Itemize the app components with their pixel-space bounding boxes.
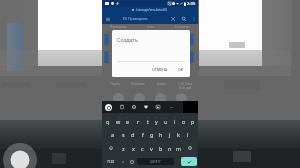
button[interactable]: Settings bbox=[130, 103, 137, 111]
staticText: 4 bbox=[138, 115, 140, 118]
staticText: o bbox=[182, 118, 186, 125]
staticText: z bbox=[122, 145, 125, 152]
staticText: k bbox=[177, 131, 180, 138]
button[interactable]: 5 bbox=[143, 113, 152, 127]
staticText: Scripts bbox=[157, 82, 166, 86]
staticText: i bbox=[174, 118, 176, 125]
staticText: f bbox=[142, 131, 144, 138]
staticText: t bbox=[147, 118, 149, 125]
staticText: j bbox=[169, 131, 171, 138]
staticText: c bbox=[141, 145, 144, 152]
staticText: 3 bbox=[127, 115, 129, 118]
button[interactable]: Enter bbox=[181, 157, 197, 166]
button[interactable]: x bbox=[128, 141, 138, 155]
staticText: Сеть bbox=[147, 25, 154, 29]
button[interactable]: j bbox=[165, 127, 174, 141]
staticText: Средства bbox=[175, 25, 190, 29]
button[interactable]: 0 bbox=[188, 113, 197, 127]
button[interactable]: 7 bbox=[161, 113, 170, 127]
staticText: 5 bbox=[147, 115, 149, 118]
button[interactable]: Close bbox=[169, 15, 176, 22]
button[interactable]: Menu bbox=[104, 15, 112, 23]
button[interactable]: Shift bbox=[103, 141, 118, 155]
staticText: p bbox=[191, 118, 195, 125]
staticText: ?123 bbox=[107, 159, 115, 164]
staticText: h bbox=[159, 131, 163, 138]
staticText: n bbox=[168, 145, 172, 152]
button[interactable]: ОТМЕНА bbox=[149, 65, 171, 74]
button[interactable]: n bbox=[165, 141, 174, 155]
staticText: 8 bbox=[174, 115, 176, 118]
staticText: ES Проводник bbox=[123, 16, 148, 21]
button[interactable]: h bbox=[156, 127, 165, 141]
button[interactable]: Search bbox=[180, 15, 187, 22]
staticText: b bbox=[159, 145, 163, 152]
staticText: d bbox=[131, 131, 135, 138]
button[interactable]: Сеть bbox=[134, 24, 166, 30]
staticText: /storage/emulated/0 bbox=[136, 8, 168, 12]
button[interactable]: Средства bbox=[166, 24, 198, 30]
button[interactable]: Google bbox=[105, 104, 112, 111]
button[interactable]: 4 bbox=[133, 113, 143, 127]
button[interactable]: 3 bbox=[123, 113, 133, 127]
button[interactable]: Backspace bbox=[183, 141, 197, 155]
button[interactable]: QWERTY bbox=[137, 158, 174, 165]
staticText: y bbox=[155, 118, 158, 125]
staticText: QWERTY bbox=[150, 160, 161, 164]
button[interactable]: 6 bbox=[152, 113, 161, 127]
staticText: Создать bbox=[117, 36, 138, 43]
staticText: a bbox=[111, 131, 115, 138]
button[interactable]: c bbox=[138, 141, 147, 155]
button[interactable]: l bbox=[183, 127, 192, 141]
staticText: 1_00_Extra Tools.apk bbox=[178, 82, 192, 89]
staticText: e bbox=[126, 118, 130, 125]
button[interactable]: More options bbox=[190, 15, 197, 22]
staticText: 1 bbox=[107, 115, 109, 118]
button[interactable]: a bbox=[108, 127, 118, 141]
button[interactable]: 1 bbox=[103, 113, 113, 127]
staticText: 0 bbox=[192, 115, 194, 118]
staticText: m bbox=[176, 145, 182, 152]
staticText: x bbox=[132, 145, 135, 152]
button[interactable]: ОК bbox=[175, 65, 187, 74]
staticText: SaveGame bbox=[131, 82, 145, 86]
staticText: w bbox=[116, 118, 121, 125]
staticText: q bbox=[106, 118, 110, 125]
button[interactable]: 8 bbox=[170, 113, 179, 127]
button[interactable]: s bbox=[118, 127, 128, 141]
button[interactable]: m bbox=[174, 141, 183, 155]
staticText: 9 bbox=[183, 115, 185, 118]
staticText: l bbox=[187, 131, 189, 138]
staticText: ОК bbox=[178, 67, 184, 72]
button[interactable]: v bbox=[147, 141, 156, 155]
staticText: Players bbox=[110, 82, 120, 86]
button[interactable]: Image bbox=[154, 103, 161, 111]
button[interactable]: Локальное bbox=[102, 24, 134, 30]
button[interactable]: k bbox=[174, 127, 183, 141]
button[interactable]: More tools bbox=[168, 103, 174, 111]
staticText: r bbox=[137, 118, 140, 125]
staticText: v bbox=[150, 145, 153, 152]
button[interactable]: f bbox=[138, 127, 147, 141]
button[interactable]: Stickers bbox=[142, 103, 149, 111]
staticText: 2 bbox=[118, 115, 120, 118]
button[interactable]: z bbox=[118, 141, 128, 155]
staticText: ОТМЕНА bbox=[152, 67, 168, 72]
button[interactable]: g bbox=[147, 127, 156, 141]
button[interactable]: Comma bbox=[118, 155, 127, 168]
button[interactable]: d bbox=[128, 127, 138, 141]
staticText: s bbox=[122, 131, 125, 138]
staticText: 6 bbox=[156, 115, 158, 118]
staticText: Локальное bbox=[110, 25, 127, 29]
staticText: g bbox=[150, 131, 154, 138]
button[interactable]: 2 bbox=[113, 113, 123, 127]
staticText: 2:35 bbox=[187, 1, 196, 7]
staticText: u bbox=[164, 118, 168, 125]
staticText: 7 bbox=[165, 115, 167, 118]
button[interactable]: b bbox=[156, 141, 165, 155]
button[interactable]: 9 bbox=[179, 113, 188, 127]
button[interactable]: Clipboard bbox=[118, 103, 125, 111]
button[interactable]: ?123 bbox=[103, 155, 118, 168]
button[interactable]: Emoji bbox=[127, 155, 137, 168]
